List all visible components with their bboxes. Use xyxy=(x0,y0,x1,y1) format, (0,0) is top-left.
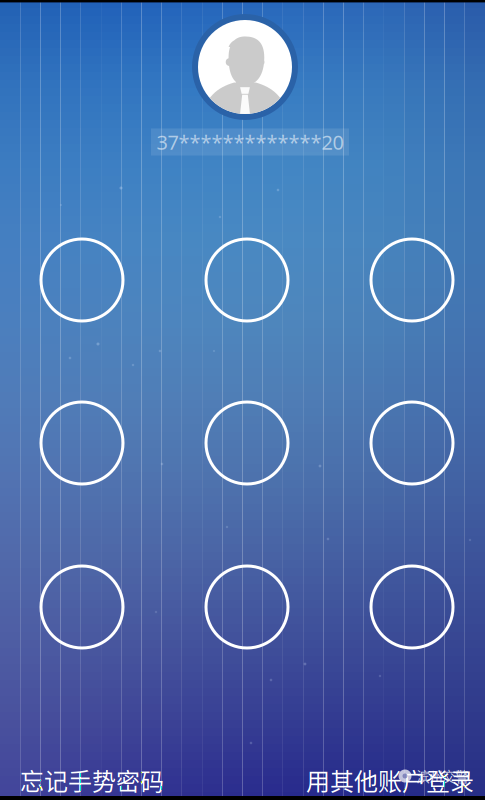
button[interactable]: 忘记手势密码 xyxy=(14,757,170,800)
button[interactable]: 用其他账户登录 xyxy=(300,757,480,800)
staticText: 用其他账户登录 xyxy=(306,763,474,797)
staticText: 忘记手势密码 xyxy=(20,763,164,797)
staticText: 37*************20 xyxy=(156,129,343,155)
staticText: 滨州交警 xyxy=(416,766,468,786)
